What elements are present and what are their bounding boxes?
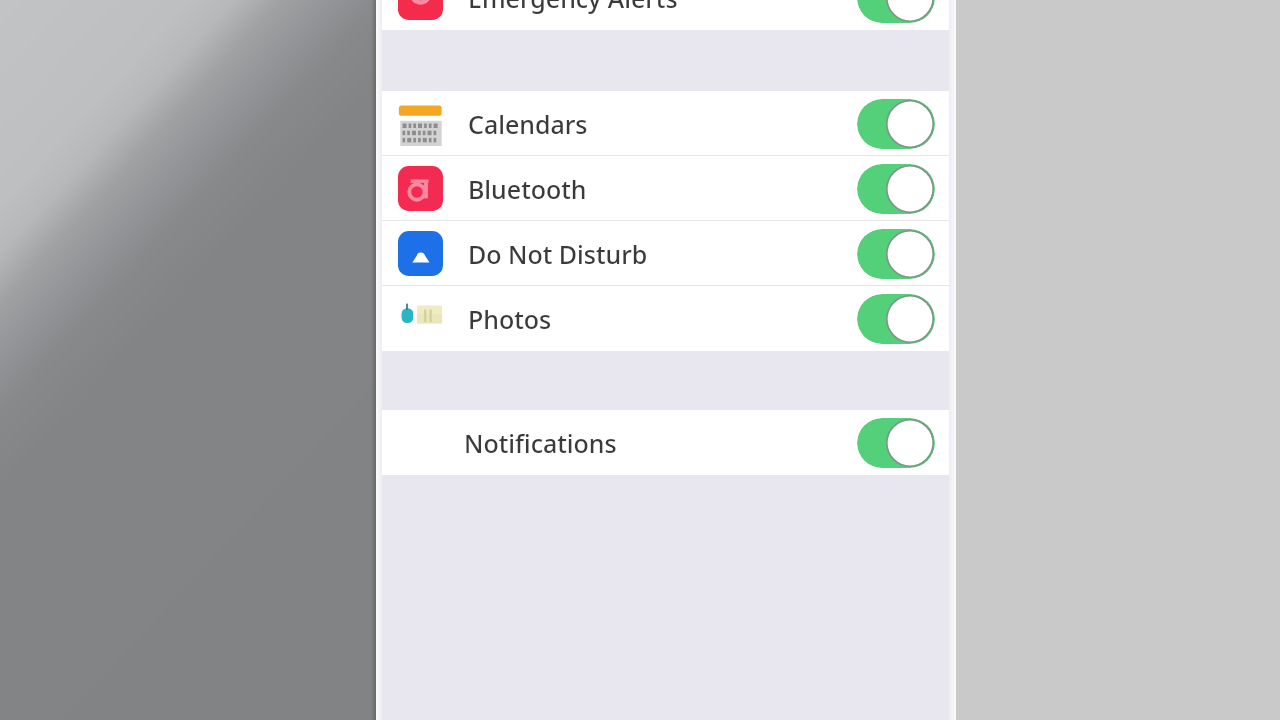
button[interactable]: Emergency Alerts: [376, 0, 956, 30]
button[interactable]: Toggle Emergency Alerts: [857, 0, 935, 23]
button[interactable]: Toggle Do Not Disturb: [857, 229, 935, 279]
button[interactable]: Do Not Disturb: [376, 221, 956, 286]
button[interactable]: Toggle Notifications: [857, 418, 935, 468]
button[interactable]: Toggle Calendars: [857, 99, 935, 149]
staticText: Bluetooth: [468, 172, 587, 206]
button[interactable]: Photos: [376, 286, 956, 351]
button[interactable]: Bluetooth: [376, 156, 956, 221]
button[interactable]: Calendars: [376, 91, 956, 156]
staticText: Photos: [468, 302, 552, 336]
staticText: Calendars: [468, 107, 588, 141]
button[interactable]: Toggle Bluetooth: [857, 164, 935, 214]
staticText: Notifications: [464, 426, 617, 460]
button[interactable]: Notifications: [376, 410, 956, 475]
staticText: Emergency Alerts: [468, 0, 678, 15]
staticText: Do Not Disturb: [468, 237, 648, 271]
button[interactable]: Toggle Photos: [857, 294, 935, 344]
